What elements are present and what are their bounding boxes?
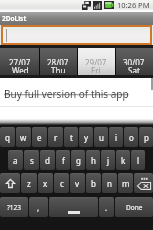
staticText: t [70,132,73,143]
button[interactable]: , [29,197,48,217]
button[interactable]: z [21,173,37,193]
staticText: j [107,155,110,166]
staticText: q [5,132,10,143]
staticText: 2DoList [2,14,27,23]
button[interactable]: 27/07 [0,48,39,75]
staticText: d [45,155,50,166]
button[interactable]: Space [49,197,98,217]
button[interactable]: x [38,173,53,193]
button[interactable]: f [56,150,70,170]
button[interactable]: j [101,150,115,170]
staticText: s [30,155,34,166]
button[interactable]: Shift [0,173,20,193]
other: Delete [137,177,151,190]
staticText: c [60,178,64,189]
staticText: w [20,132,27,143]
button[interactable]: b [86,173,101,193]
staticText: . [105,202,108,213]
button[interactable]: 28/07 [39,48,77,75]
button[interactable]: Delete [134,173,153,193]
staticText: i [115,132,118,143]
staticText: f [62,155,65,166]
staticText: Done [126,203,143,212]
staticText: l [137,155,140,166]
button[interactable]: o [124,127,138,147]
button[interactable]: m [118,173,133,193]
staticText: 30/07 [123,57,145,65]
staticText: o [129,132,134,143]
button[interactable]: y [79,127,93,147]
button[interactable]: Buy full version of this app [0,78,153,119]
button[interactable]: c [54,173,69,193]
button[interactable]: t [64,127,78,147]
button[interactable]: e [32,127,47,147]
staticText: 10:26 PM [117,0,150,10]
staticText: u [99,132,104,143]
button[interactable]: . [99,197,114,217]
staticText: ?123 [7,203,21,212]
button[interactable]: k [116,150,130,170]
staticText: Fri [91,65,101,73]
other: Space [49,197,98,217]
staticText: 29/07 [85,57,107,65]
staticText: Thu [51,65,66,73]
staticText: h [91,155,96,166]
button[interactable]: r [48,127,63,147]
button[interactable]: 29/07 [77,48,115,75]
staticText: p [144,132,149,143]
other: Shift [6,179,15,188]
staticText: k [121,155,126,166]
button[interactable]: p [139,127,153,147]
staticText: m [122,178,130,189]
button[interactable]: q [0,127,15,147]
button[interactable]: a [8,150,23,170]
staticText: Buy full version of this app [4,87,129,101]
button[interactable]: i [109,127,123,147]
staticText: g [76,155,81,166]
staticText: e [37,132,42,143]
staticText: v [75,178,80,189]
button[interactable]: ?123 [0,197,28,217]
staticText: 27/07 [9,57,31,65]
staticText: z [27,178,31,189]
staticText: , [37,202,40,213]
staticText: y [84,132,89,143]
staticText: Sat [128,65,140,73]
button[interactable]: 30/07 [115,48,153,75]
button[interactable]: d [40,150,55,170]
staticText: Wed [12,65,29,73]
button[interactable]: h [86,150,100,170]
staticText: x [43,178,48,189]
staticText: 28/07 [47,57,69,65]
staticText: b [91,178,96,189]
button[interactable]: n [102,173,117,193]
button[interactable]: Done [115,197,153,217]
button[interactable]: l [131,150,145,170]
button[interactable]: u [94,127,108,147]
button[interactable]: g [71,150,85,170]
staticText: a [13,155,18,166]
button[interactable]: v [70,173,85,193]
staticText: r [54,132,58,143]
button[interactable]: w [16,127,31,147]
button[interactable] [3,27,150,43]
button[interactable]: s [24,150,39,170]
staticText: n [107,178,112,189]
